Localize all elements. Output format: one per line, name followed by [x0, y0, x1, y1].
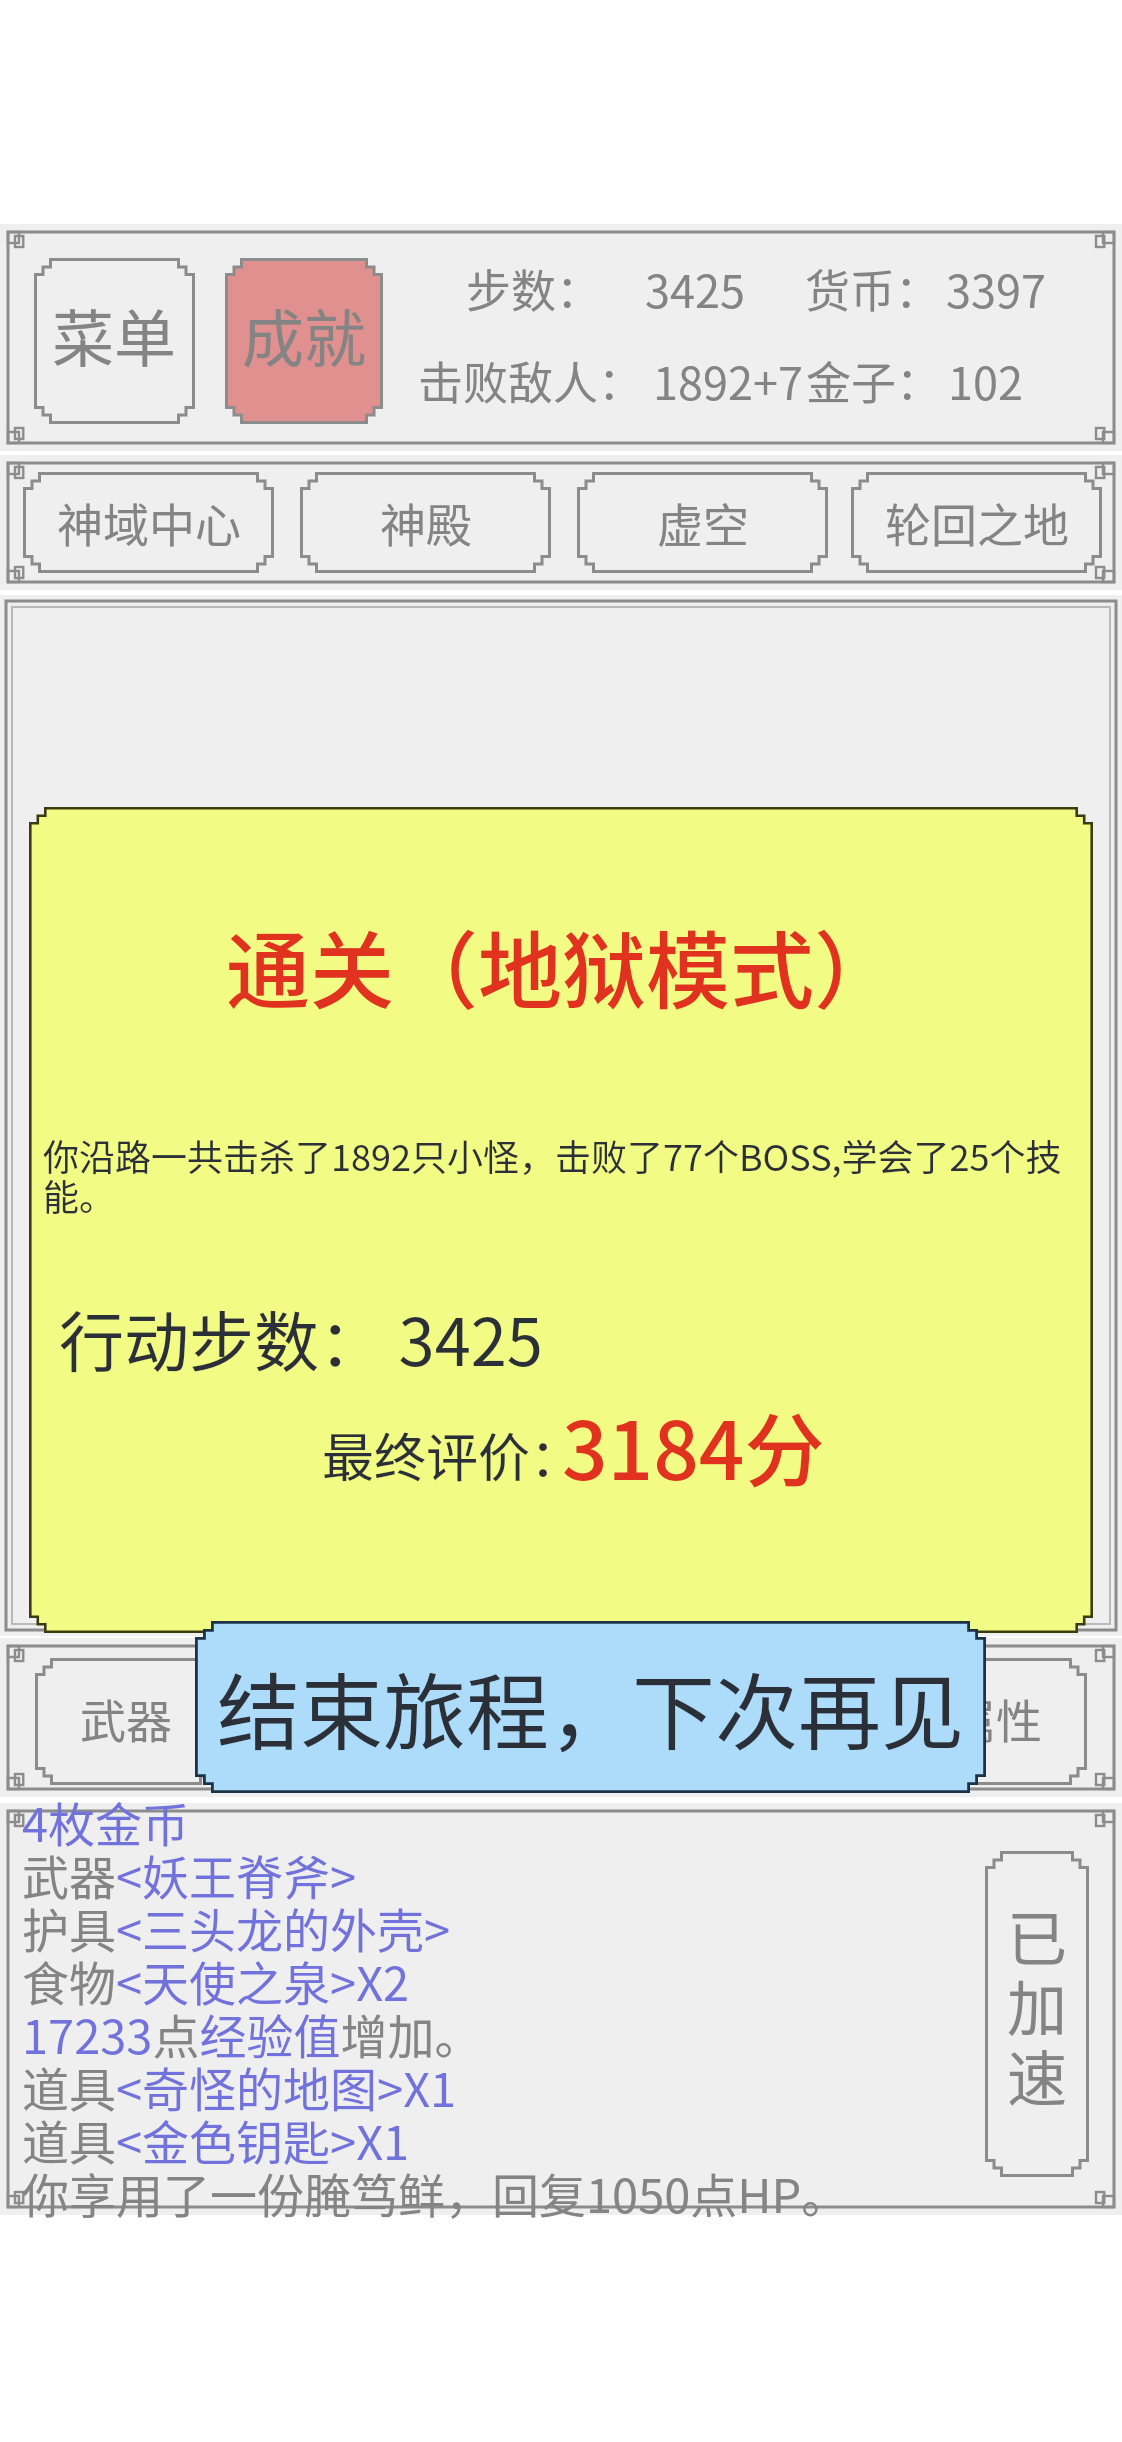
staticText: 通关（地狱模式） — [226, 905, 899, 1027]
staticText: 已 — [1007, 1891, 1067, 1978]
staticText: 击败敌人： — [418, 348, 644, 413]
staticText: 最终评价： — [322, 1417, 583, 1492]
staticText: 武器 — [80, 1685, 172, 1752]
button[interactable]: 虚空 — [577, 472, 828, 573]
staticText: 道具 — [660, 1685, 752, 1752]
button[interactable]: 成就 — [225, 258, 383, 424]
button[interactable]: 道具 — [615, 1658, 797, 1785]
staticText: 你沿路一共击杀了1892只小怪，击败了77个BOSS,学会了25个技能。 — [43, 1129, 1083, 1221]
staticText: 防具 — [370, 1685, 462, 1752]
button[interactable]: 神殿 — [300, 472, 551, 573]
staticText: 17233点经验值增加。 — [22, 1999, 482, 2067]
staticText: 步数： — [466, 256, 602, 321]
staticText: 武器<妖王脊斧> — [22, 1840, 357, 1908]
button[interactable]: 武器 — [35, 1658, 217, 1785]
button[interactable]: 已 — [985, 1851, 1089, 2177]
staticText: 货币： — [805, 256, 941, 321]
staticText: 道具<金色钥匙>X1 — [22, 2105, 410, 2173]
staticText: 结束旅程，下次再见 — [217, 1647, 964, 1767]
staticText: 你享用了一份腌笃鲜，回复1050点HP。 — [22, 2158, 849, 2226]
staticText: 虚空 — [657, 489, 749, 556]
button[interactable]: 防具 — [325, 1658, 507, 1785]
staticText: 护具<三头龙的外壳> — [22, 1893, 451, 1961]
staticText: 速 — [1007, 2031, 1067, 2118]
button[interactable]: 结束旅程，下次再见 — [195, 1621, 986, 1793]
staticText: 轮回之地 — [885, 489, 1069, 556]
staticText: 加 — [1007, 1961, 1067, 2048]
staticText: 菜单 — [52, 290, 177, 380]
button[interactable]: 轮回之地 — [851, 472, 1102, 573]
staticText: 金子： — [806, 348, 942, 413]
staticText: 1892+7 — [653, 348, 803, 413]
button[interactable]: 属性 — [905, 1658, 1087, 1785]
staticText: 102 — [948, 348, 1023, 413]
staticText: 属性 — [950, 1685, 1042, 1752]
staticText: 3425 — [645, 256, 745, 321]
staticText: 行动步数： 3425 — [59, 1291, 543, 1385]
staticText: 神域中心 — [57, 489, 241, 556]
staticText: 成就 — [242, 290, 367, 380]
staticText: 神殿 — [380, 489, 472, 556]
button[interactable]: 神域中心 — [23, 472, 274, 573]
button[interactable]: 菜单 — [34, 258, 195, 424]
staticText: 食物<天使之泉>X2 — [22, 1946, 410, 2014]
staticText: 3397 — [946, 256, 1046, 321]
staticText: 4枚金币 — [22, 1787, 190, 1855]
staticText: 道具<奇怪的地图>X1 — [22, 2052, 457, 2120]
staticText: 3184分 — [562, 1387, 825, 1503]
